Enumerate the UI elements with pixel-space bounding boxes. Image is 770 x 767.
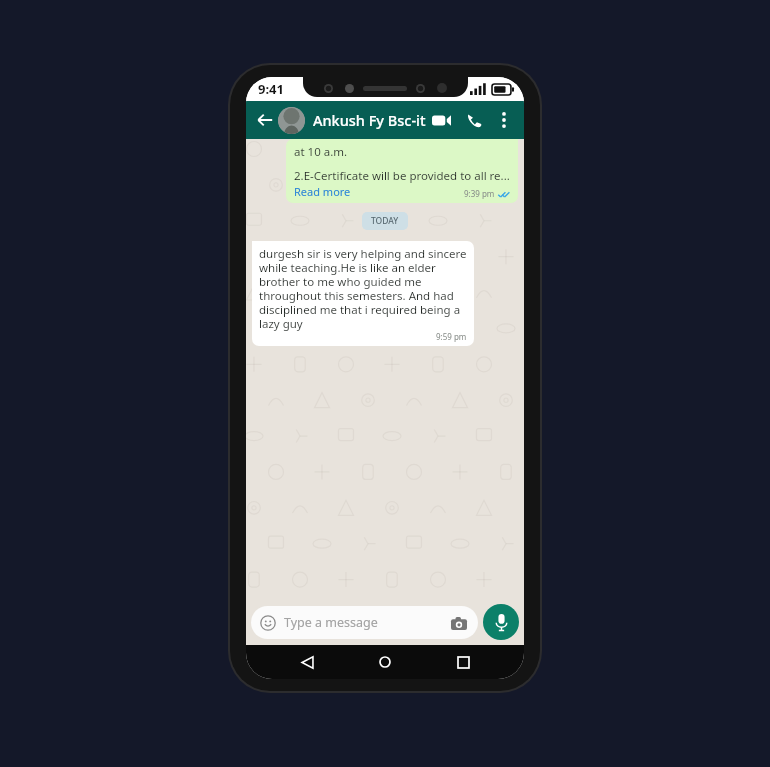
staticText: TODAY [371,215,399,227]
staticText: at 10 a.m. [294,144,348,160]
button[interactable]: Ankush Fy Bsc-it [313,110,428,130]
staticText: 2.E-Certificate will be provided to all … [294,168,510,184]
staticText: Type a message [284,614,449,631]
button[interactable]: Back [254,109,276,131]
button[interactable]: durgesh sir is very helping and sincere … [252,241,474,346]
button[interactable]: Type a message [251,606,478,639]
button[interactable]: Camera [449,613,469,633]
button[interactable]: Video call [428,107,454,133]
button[interactable]: at 10 a.m. [286,139,518,203]
staticText: 9:39 pm [464,188,495,199]
button[interactable]: Call [461,107,487,133]
button[interactable]: Record voice message [483,604,519,640]
staticText: 9:59 pm [436,331,467,342]
button[interactable] [278,107,305,134]
staticText: 9:41 [258,80,284,98]
staticText: durgesh sir is very helping and sincere … [259,246,467,331]
button[interactable]: Read more [294,184,351,199]
button[interactable]: Back [290,645,324,679]
button[interactable]: Home [368,645,402,679]
button[interactable]: More options [492,108,516,132]
button[interactable]: Recent apps [446,645,480,679]
